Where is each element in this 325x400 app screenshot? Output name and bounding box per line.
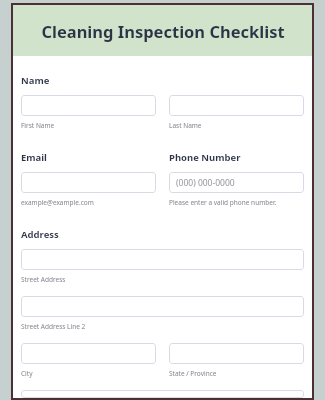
button[interactable] <box>21 296 304 317</box>
button[interactable]: (000) 000-0000 <box>169 172 304 193</box>
button[interactable] <box>21 390 304 398</box>
staticText: Street Address <box>21 275 66 284</box>
staticText: (000) 000-0000 <box>176 177 235 189</box>
staticText: example@example.com <box>21 198 94 207</box>
staticText: Email <box>21 151 47 164</box>
button[interactable] <box>169 95 304 116</box>
button[interactable] <box>21 249 304 270</box>
staticText: Cleaning Inspection Checklist <box>41 20 285 42</box>
staticText: Name <box>21 74 50 87</box>
button[interactable] <box>169 343 304 364</box>
staticText: Last Name <box>169 121 202 130</box>
button[interactable] <box>21 343 156 364</box>
staticText: Please enter a valid phone number. <box>169 198 277 207</box>
staticText: Street Address Line 2 <box>21 322 86 331</box>
staticText: State / Province <box>169 369 217 378</box>
staticText: Phone Number <box>169 151 241 164</box>
button[interactable] <box>21 95 156 116</box>
staticText: City <box>21 369 33 378</box>
staticText: First Name <box>21 121 55 130</box>
staticText: Address <box>21 228 59 241</box>
button[interactable] <box>21 172 156 193</box>
